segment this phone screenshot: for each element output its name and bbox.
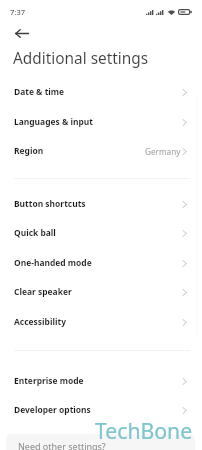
button[interactable]: One-handed mode — [0, 248, 202, 278]
staticText: Germany — [145, 146, 181, 157]
staticText: Need other settings? — [18, 440, 106, 450]
staticText: Button shortcuts — [14, 198, 86, 210]
button[interactable]: Clear speaker — [0, 277, 202, 307]
button[interactable]: Button shortcuts — [0, 189, 202, 219]
staticText: TechBone — [95, 416, 193, 445]
staticText: Developer options — [14, 404, 91, 416]
staticText: Languages & input — [14, 116, 93, 128]
staticText: Enterprise mode — [14, 375, 84, 387]
button[interactable]: Back — [11, 22, 33, 44]
staticText: Accessibility — [14, 316, 66, 328]
button[interactable]: Developer options — [0, 395, 202, 425]
button[interactable]: Enterprise mode — [0, 366, 202, 396]
staticText: Clear speaker — [14, 286, 72, 298]
button[interactable]: Quick ball — [0, 218, 202, 248]
staticText: Additional settings — [13, 48, 149, 69]
staticText: One-handed mode — [14, 257, 92, 269]
staticText: Date & time — [14, 86, 65, 98]
button[interactable]: Date & time — [0, 77, 202, 107]
button[interactable]: Need other settings? — [6, 434, 195, 450]
staticText: Region — [14, 145, 44, 157]
button[interactable]: Accessibility — [0, 307, 202, 337]
staticText: 7:37 — [10, 7, 26, 17]
button[interactable]: Region — [0, 136, 202, 166]
button[interactable]: Languages & input — [0, 107, 202, 137]
staticText: Quick ball — [14, 227, 56, 239]
